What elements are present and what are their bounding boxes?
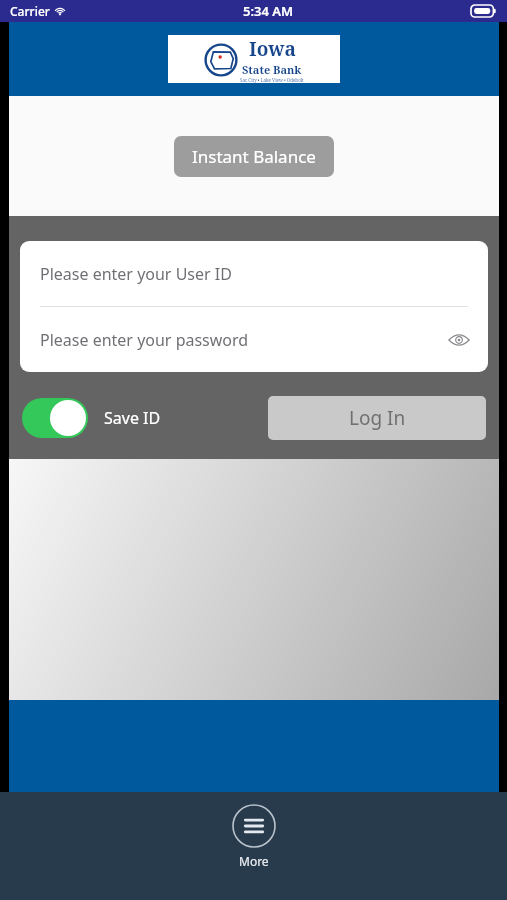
button[interactable]: Please enter your password — [20, 307, 488, 372]
staticText: More — [239, 853, 269, 869]
button[interactable]: Please enter your User ID — [20, 241, 488, 306]
button[interactable]: Save ID toggle — [22, 398, 88, 438]
button[interactable]: Show password — [444, 325, 474, 355]
button[interactable]: Log In — [268, 396, 486, 440]
staticText: Iowa — [249, 36, 296, 62]
staticText: Sac City • Lake View • Odebolt — [240, 77, 304, 83]
staticText: Instant Balance — [192, 145, 316, 168]
button[interactable]: Iowa State Bank logo — [168, 35, 340, 83]
staticText: State Bank — [242, 62, 302, 77]
button[interactable]: Instant Balance — [174, 136, 334, 177]
staticText: 5:34 AM — [243, 2, 294, 20]
staticText: Carrier — [10, 3, 50, 19]
staticText: Please enter your password — [40, 329, 249, 351]
staticText: Save ID — [104, 407, 161, 429]
button[interactable]: More — [232, 804, 276, 869]
staticText: Log In — [349, 405, 406, 431]
staticText: Please enter your User ID — [40, 263, 232, 285]
